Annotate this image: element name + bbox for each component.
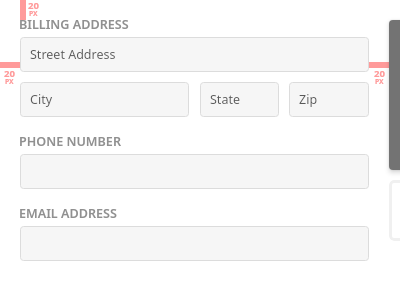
staticText: EMAIL ADDRESS (19, 205, 117, 222)
button[interactable]: Card (389, 180, 400, 241)
staticText: PX (375, 77, 384, 86)
button[interactable]: City (20, 82, 189, 117)
button[interactable]: Zip (289, 82, 369, 117)
staticText: 20 (374, 67, 385, 80)
staticText: PHONE NUMBER (19, 133, 121, 150)
staticText: 20 (4, 67, 15, 80)
staticText: Street Address (30, 46, 116, 63)
staticText: 20 (28, 0, 39, 12)
staticText: PX (5, 77, 14, 86)
staticText: Zip (299, 91, 318, 108)
button[interactable]: State (200, 82, 279, 117)
button[interactable]: Street Address (20, 37, 369, 72)
button[interactable]: Input field (20, 226, 369, 261)
button[interactable]: Input field (20, 154, 369, 189)
staticText: City (30, 91, 53, 108)
staticText: BILLING ADDRESS (19, 16, 129, 33)
staticText: State (210, 91, 240, 108)
staticText: PX (29, 9, 38, 18)
button[interactable]: Side panel (389, 20, 400, 170)
